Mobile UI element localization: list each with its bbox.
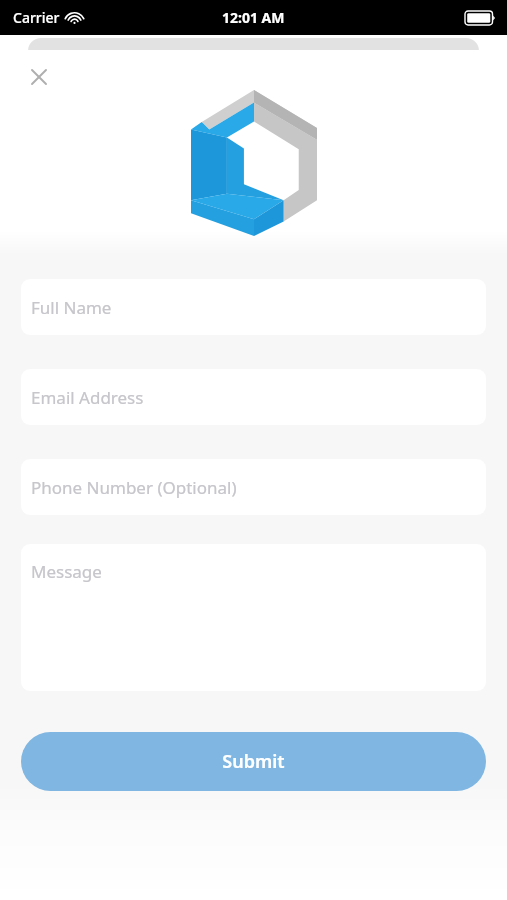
staticText: Email Address: [31, 386, 144, 409]
button[interactable]: Phone Number (Optional): [21, 459, 486, 515]
button[interactable]: Full Name: [21, 279, 486, 335]
button[interactable]: Submit: [21, 732, 486, 791]
staticText: Submit: [222, 749, 285, 774]
staticText: Phone Number (Optional): [31, 476, 237, 499]
button[interactable]: Message: [21, 544, 486, 691]
staticText: Full Name: [31, 296, 112, 319]
staticText: Carrier: [13, 8, 60, 27]
staticText: 12:01 AM: [222, 8, 285, 27]
staticText: Message: [31, 560, 102, 583]
button[interactable]: Email Address: [21, 369, 486, 425]
button[interactable]: Close: [24, 62, 54, 92]
